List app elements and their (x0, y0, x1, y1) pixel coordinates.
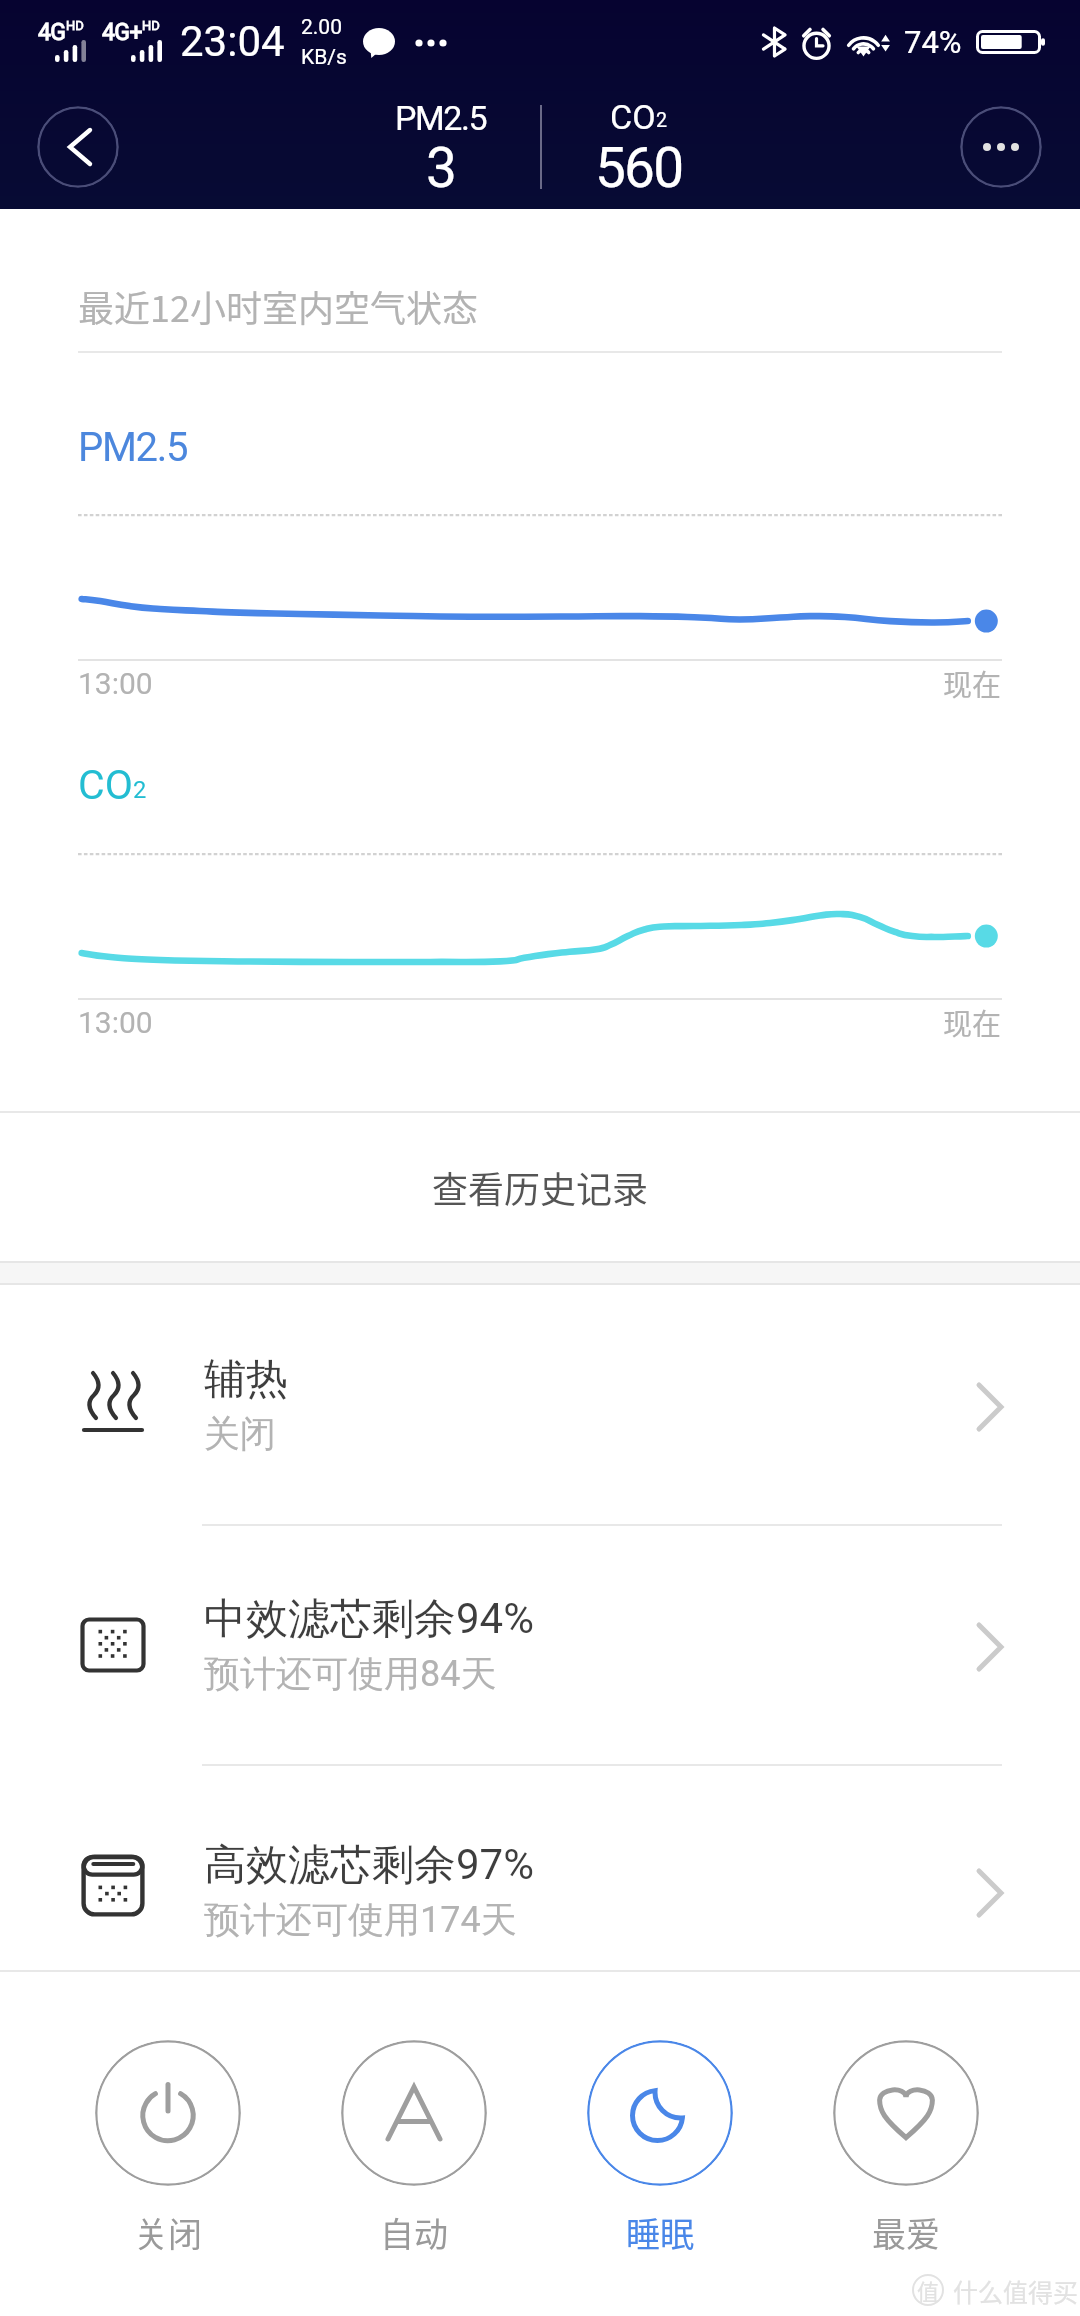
staticText: 预计还可使用174天 (204, 1897, 517, 1942)
button[interactable] (0, 1284, 1080, 1524)
button[interactable]: 关闭 (95, 2040, 241, 2186)
button[interactable]: 睡眠 (587, 2040, 733, 2186)
staticText: 辅热 (204, 1353, 288, 1406)
staticText: 预计还可使用84天 (204, 1651, 497, 1696)
staticText: 23:04 (180, 17, 285, 66)
staticText: CO (78, 761, 133, 809)
staticText: 现在 (943, 662, 1002, 704)
staticText: 自动 (380, 2208, 448, 2257)
staticText: 2.00 (301, 15, 342, 40)
staticText: 13:00 (78, 666, 153, 701)
button[interactable]: 查看历史记录 (0, 1112, 1080, 1262)
staticText: 4G+ (102, 19, 142, 46)
staticText: HD (142, 18, 160, 33)
button[interactable]: 最爱 (833, 2040, 979, 2186)
staticText: 查看历史记录 (432, 1161, 649, 1213)
staticText: 高效滤芯剩余97% (204, 1839, 534, 1892)
staticText: PM2.5 (78, 424, 188, 471)
staticText: 74% (904, 24, 962, 60)
button[interactable]: Back (37, 106, 119, 188)
staticText: 关闭 (134, 2208, 202, 2257)
staticText: 最近12小时室内空气状态 (78, 280, 478, 332)
staticText: 关闭 (204, 1411, 276, 1456)
button[interactable]: More options (960, 106, 1042, 188)
staticText: 2 (133, 776, 147, 804)
staticText: 4G (38, 19, 66, 46)
staticText: 3 (426, 136, 457, 200)
staticText: 睡眠 (626, 2208, 694, 2257)
button[interactable] (0, 1525, 1080, 1764)
staticText: KB/s (301, 45, 347, 70)
staticText: 560 (595, 136, 683, 200)
button[interactable]: 自动 (341, 2040, 487, 2186)
staticText: 值 (917, 2274, 940, 2306)
staticText: 现在 (943, 1001, 1002, 1043)
staticText: 最爱 (872, 2208, 940, 2257)
staticText: CO (610, 97, 656, 137)
staticText: 什么值得买 (953, 2273, 1079, 2309)
staticText: PM2.5 (395, 98, 487, 138)
staticText: HD (66, 18, 84, 33)
button[interactable] (0, 1765, 1080, 1970)
staticText: 13:00 (78, 1005, 153, 1040)
staticText: 2 (656, 109, 668, 132)
staticText: 中效滤芯剩余94% (204, 1593, 534, 1646)
